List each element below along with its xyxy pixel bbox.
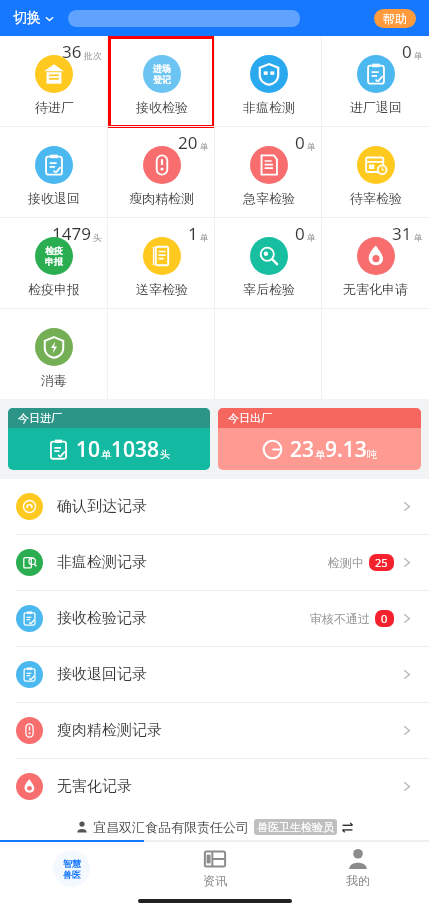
staticText: 单 (307, 232, 316, 243)
button[interactable]: 无害化记录 (0, 759, 429, 814)
button[interactable]: 资讯 (143, 842, 286, 894)
button[interactable]: 31 (322, 218, 429, 308)
staticText: 资讯 (203, 873, 227, 888)
staticText: 1 (188, 222, 198, 245)
staticText: 单 (414, 50, 423, 61)
staticText: 急宰检验 (243, 190, 295, 206)
staticText: 单 (414, 232, 423, 243)
staticText: 申报 (45, 256, 63, 267)
staticText: 0 (295, 222, 305, 245)
staticText: 接收退回 (28, 190, 80, 206)
staticText: 0 (402, 40, 412, 63)
staticText: 36 (62, 40, 82, 63)
staticText: 消毒 (41, 372, 67, 388)
button[interactable]: 接收退回 (0, 127, 108, 217)
button[interactable]: 智慧兽医 (0, 842, 143, 894)
button[interactable]: 帮助 (374, 9, 416, 28)
button[interactable]: 确认到达记录 (0, 479, 429, 534)
staticText: 检疫申报 (28, 281, 80, 297)
staticText: 23 (290, 435, 315, 464)
staticText: 头 (93, 232, 102, 243)
staticText: 切换 (13, 9, 41, 27)
button[interactable]: 切换 (13, 9, 54, 27)
button[interactable]: 36 (0, 36, 108, 126)
staticText: 无害化记录 (57, 777, 132, 796)
staticText: 25 (375, 555, 388, 570)
staticText: 待宰检验 (350, 190, 402, 206)
button[interactable]: 非瘟检测 (215, 36, 322, 126)
button[interactable]: 0 (322, 36, 429, 126)
button[interactable]: 我的 (286, 842, 429, 894)
button[interactable]: 今日出厂 (218, 408, 421, 470)
staticText: 帮助 (383, 11, 407, 26)
staticText: 瘦肉精检测记录 (57, 721, 162, 740)
staticText: 20 (178, 131, 198, 154)
staticText: 单 (101, 448, 111, 461)
staticText: 单 (307, 141, 316, 152)
staticText: 0 (295, 131, 305, 154)
staticText: 批次 (84, 50, 102, 61)
staticText: 登记 (153, 74, 171, 85)
staticText: 1038 (111, 435, 160, 464)
button[interactable]: 瘦肉精检测记录 (0, 703, 429, 758)
staticText: 我的 (346, 873, 370, 888)
staticText: 瘦肉精检测 (129, 190, 194, 206)
staticText: 接收检验记录 (57, 609, 147, 628)
staticText: 今日出厂 (228, 411, 272, 425)
staticText: 吨 (367, 448, 377, 461)
button[interactable]: 1479 (0, 218, 108, 308)
staticText: 10 (76, 435, 101, 464)
staticText: 接收检验 (136, 99, 188, 115)
staticText: 无害化申请 (343, 281, 408, 297)
staticText: 兽医卫生检验员 (257, 820, 334, 834)
button[interactable]: 接收退回记录 (0, 647, 429, 702)
button[interactable]: 20 (108, 127, 215, 217)
button[interactable]: 进场 (108, 36, 215, 126)
staticText: 接收退回记录 (57, 665, 147, 684)
button[interactable]: 1 (108, 218, 215, 308)
staticText: 单 (315, 448, 325, 461)
button[interactable]: 0 (215, 218, 322, 308)
staticText: 检测中 (328, 555, 364, 570)
staticText: 确认到达记录 (57, 497, 147, 516)
staticText: 送宰检验 (136, 281, 188, 297)
button[interactable]: 宜昌双汇食品有限责任公司 (0, 814, 429, 840)
staticText: 非瘟检测记录 (57, 553, 147, 572)
staticText: 待进厂 (35, 99, 74, 115)
staticText: 智慧 (63, 858, 81, 869)
button[interactable]: 消毒 (0, 309, 108, 399)
staticText: 31 (392, 222, 412, 245)
staticText: 单 (200, 232, 209, 243)
staticText: 头 (160, 448, 170, 461)
staticText: 1479 (52, 222, 91, 245)
staticText: 检疫 (45, 245, 63, 256)
staticText: 非瘟检测 (243, 99, 295, 115)
staticText: 0 (381, 611, 388, 626)
staticText: 今日进厂 (18, 411, 62, 425)
staticText: 进场 (153, 63, 171, 74)
staticText: 9.13 (325, 435, 367, 464)
staticText: 宰后检验 (243, 281, 295, 297)
staticText: 宜昌双汇食品有限责任公司 (93, 819, 249, 835)
button[interactable]: 今日进厂 (8, 408, 210, 470)
button[interactable]: 接收检验记录 (0, 591, 429, 646)
staticText: 兽医 (63, 869, 81, 880)
button[interactable]: 非瘟检测记录 (0, 535, 429, 590)
staticText: 审核不通过 (310, 611, 370, 626)
button[interactable]: 待宰检验 (322, 127, 429, 217)
other: Switch role (342, 822, 353, 833)
staticText: 单 (200, 141, 209, 152)
button[interactable]: 0 (215, 127, 322, 217)
staticText: 进厂退回 (350, 99, 402, 115)
